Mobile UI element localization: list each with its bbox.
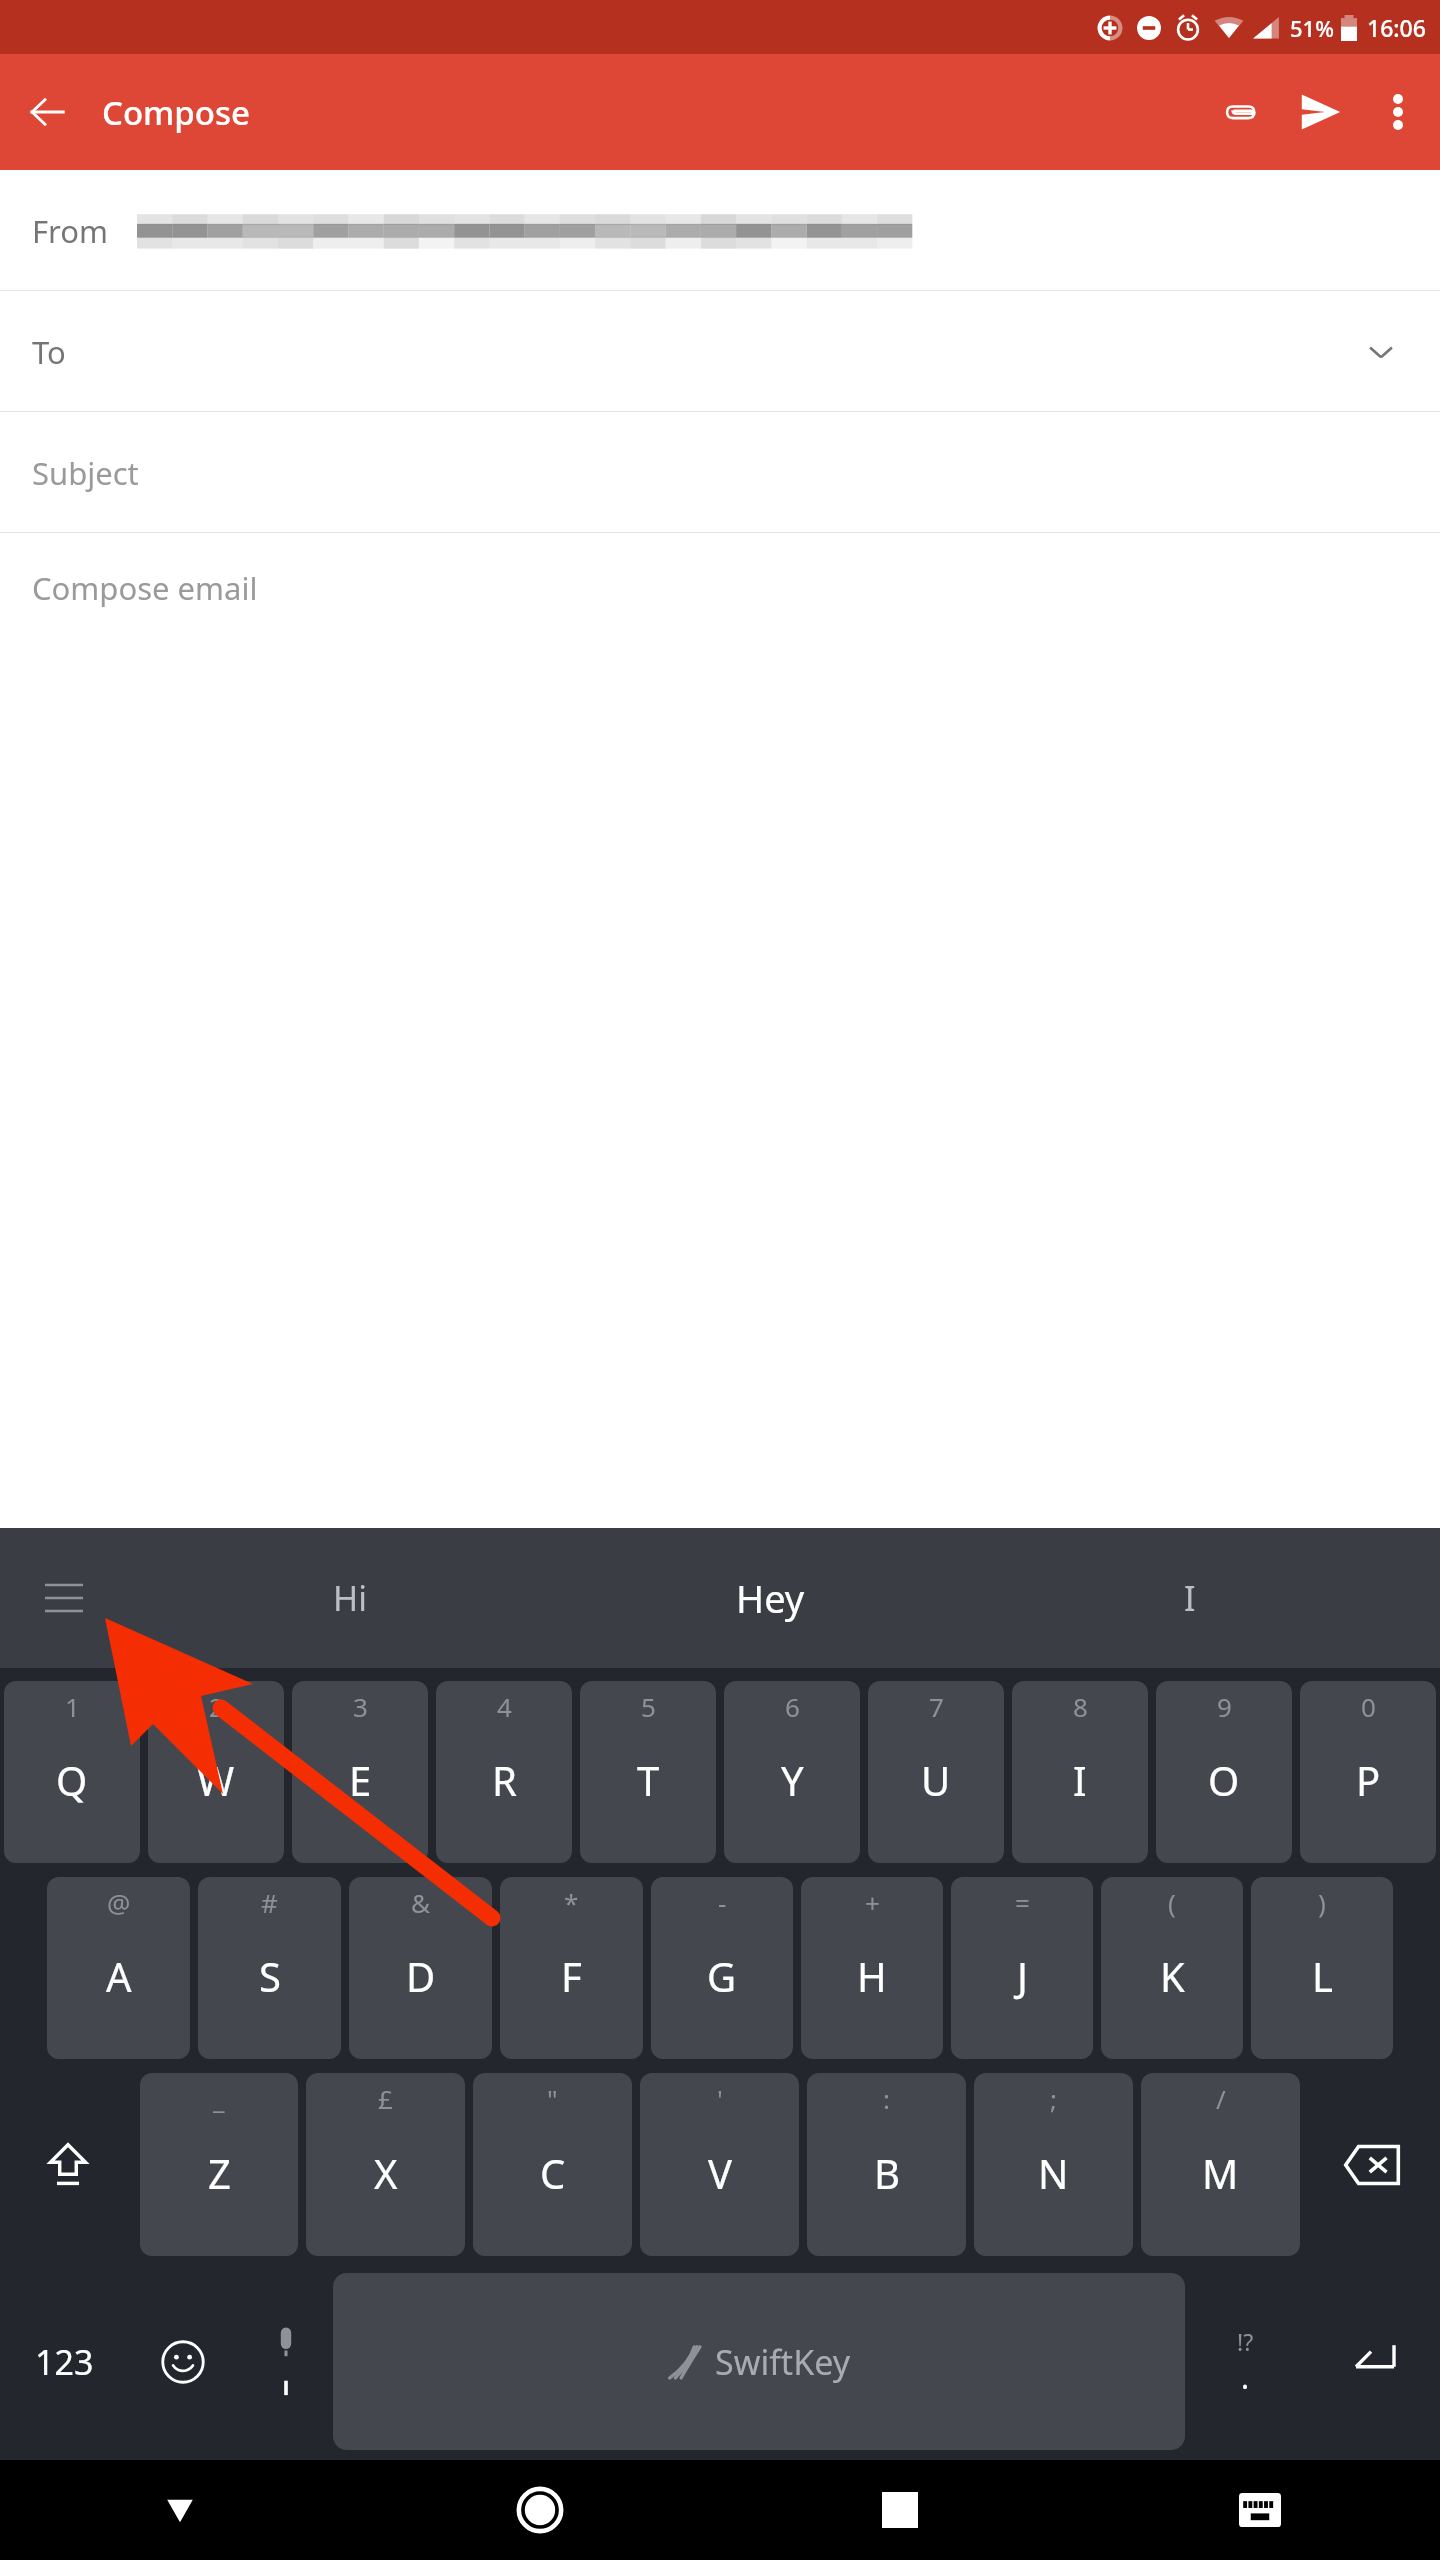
button[interactable]: Space bbox=[333, 2273, 1185, 2450]
staticText: @ bbox=[107, 1885, 131, 1920]
staticText: G bbox=[707, 1949, 737, 2003]
button[interactable]: !? bbox=[1185, 2263, 1305, 2460]
staticText: 3 bbox=[353, 1689, 368, 1724]
button[interactable]: Emoji bbox=[128, 2263, 238, 2460]
button[interactable]: & bbox=[349, 1877, 492, 2059]
button[interactable]: @ bbox=[47, 1877, 190, 2059]
staticText: 0 bbox=[1361, 1689, 1376, 1724]
staticText: A bbox=[106, 1949, 132, 2003]
staticText: Q bbox=[56, 1753, 88, 1807]
button[interactable]: Home bbox=[360, 2460, 720, 2560]
staticText: 7 bbox=[929, 1689, 944, 1724]
staticText: : bbox=[883, 2081, 890, 2116]
button[interactable]: From bbox=[0, 170, 1440, 291]
staticText: B bbox=[874, 2146, 900, 2200]
button[interactable]: 4 bbox=[436, 1681, 572, 1863]
staticText: H bbox=[857, 1949, 887, 2003]
button[interactable]: £ bbox=[306, 2073, 465, 2256]
staticText: V bbox=[708, 2146, 732, 2200]
staticText: 6 bbox=[785, 1689, 800, 1724]
button[interactable]: ) bbox=[1251, 1877, 1393, 2059]
staticText: ; bbox=[1050, 2081, 1057, 2116]
button[interactable]: " bbox=[473, 2073, 632, 2256]
button[interactable]: I bbox=[980, 1528, 1400, 1668]
button[interactable]: 2 bbox=[148, 1681, 284, 1863]
button[interactable]: 8 bbox=[1012, 1681, 1148, 1863]
staticText: F bbox=[561, 1949, 582, 2003]
button[interactable]: Backspace bbox=[1304, 2066, 1440, 2263]
staticText: _ bbox=[213, 2081, 225, 2116]
button[interactable]: Send bbox=[1278, 69, 1364, 155]
button[interactable]: Hi bbox=[140, 1528, 560, 1668]
staticText: 4 bbox=[497, 1689, 512, 1724]
button[interactable]: Switch keyboard bbox=[1080, 2460, 1440, 2560]
button[interactable]: ' bbox=[640, 2073, 799, 2256]
button[interactable]: # bbox=[198, 1877, 341, 2059]
button[interactable]: : bbox=[807, 2073, 966, 2256]
staticText: R bbox=[492, 1753, 517, 1807]
staticText: N bbox=[1038, 2146, 1069, 2200]
button[interactable]: 7 bbox=[868, 1681, 1004, 1863]
staticText: M bbox=[1202, 2146, 1239, 2200]
button[interactable]: _ bbox=[140, 2073, 298, 2256]
button[interactable]: Recent apps bbox=[720, 2460, 1080, 2560]
staticText: # bbox=[261, 1885, 278, 1920]
staticText: To bbox=[32, 331, 66, 373]
button[interactable]: * bbox=[500, 1877, 643, 2059]
button[interactable]: More options bbox=[1364, 74, 1432, 150]
button[interactable]: ; bbox=[974, 2073, 1133, 2256]
staticText: 5 bbox=[641, 1689, 656, 1724]
button[interactable]: Voice input bbox=[238, 2263, 333, 2460]
staticText: 2 bbox=[209, 1689, 224, 1724]
button[interactable]: Back bbox=[14, 79, 80, 145]
staticText: 123 bbox=[35, 2339, 94, 2385]
staticText: * bbox=[564, 1885, 579, 1920]
staticText: 16:06 bbox=[1367, 12, 1426, 43]
staticText: ) bbox=[1318, 1885, 1326, 1920]
staticText: P bbox=[1356, 1753, 1381, 1807]
staticText: I bbox=[1184, 1575, 1196, 1621]
button[interactable]: 6 bbox=[724, 1681, 860, 1863]
button[interactable]: 3 bbox=[292, 1681, 428, 1863]
staticText: £ bbox=[378, 2081, 393, 2116]
staticText: T bbox=[637, 1753, 660, 1807]
button[interactable]: - bbox=[651, 1877, 793, 2059]
staticText: / bbox=[1216, 2081, 1226, 2116]
button[interactable]: Hide keyboard bbox=[0, 2460, 360, 2560]
staticText: D bbox=[406, 1949, 436, 2003]
button[interactable]: Enter bbox=[1305, 2263, 1440, 2460]
staticText: Hi bbox=[333, 1575, 367, 1621]
button[interactable]: ( bbox=[1101, 1877, 1243, 2059]
staticText: 8 bbox=[1073, 1689, 1088, 1724]
staticText: ' bbox=[717, 2081, 723, 2116]
button[interactable]: Keyboard menu bbox=[22, 1556, 106, 1640]
staticText: & bbox=[411, 1885, 431, 1920]
button[interactable]: / bbox=[1141, 2073, 1300, 2256]
button[interactable]: 5 bbox=[580, 1681, 716, 1863]
button[interactable]: Subject bbox=[0, 412, 1440, 533]
button[interactable]: 123 bbox=[0, 2263, 128, 2460]
staticText: O bbox=[1208, 1753, 1240, 1807]
staticText: Hey bbox=[736, 1572, 805, 1624]
button[interactable]: 9 bbox=[1156, 1681, 1292, 1863]
staticText: W bbox=[197, 1753, 235, 1807]
button[interactable]: + bbox=[801, 1877, 943, 2059]
button[interactable]: Compose email bbox=[0, 533, 1440, 643]
staticText: Z bbox=[208, 2146, 231, 2200]
button[interactable]: 0 bbox=[1300, 1681, 1436, 1863]
button[interactable]: Hey bbox=[560, 1528, 980, 1668]
button[interactable]: 1 bbox=[4, 1681, 140, 1863]
staticText: ( bbox=[1168, 1885, 1176, 1920]
staticText: SwiftKey bbox=[715, 2339, 851, 2385]
staticText: L bbox=[1312, 1949, 1333, 2003]
button[interactable]: Attach file bbox=[1202, 74, 1278, 150]
staticText: S bbox=[259, 1949, 281, 2003]
button[interactable]: To bbox=[0, 291, 1440, 412]
staticText: 51% bbox=[1290, 13, 1334, 43]
staticText: From bbox=[32, 210, 109, 252]
staticText: - bbox=[718, 1885, 727, 1920]
button[interactable]: Shift bbox=[0, 2066, 136, 2263]
staticText: Subject bbox=[32, 452, 139, 494]
button[interactable]: = bbox=[951, 1877, 1093, 2059]
staticText: J bbox=[1017, 1949, 1028, 2003]
